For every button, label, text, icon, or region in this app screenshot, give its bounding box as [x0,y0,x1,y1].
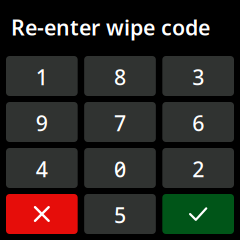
button[interactable]: 5 [84,194,156,234]
button[interactable]: 6 [162,102,234,142]
staticText: 6 [192,109,204,137]
staticText: 5 [114,201,126,229]
staticText: 3 [192,63,204,91]
staticText: 9 [36,109,48,137]
staticText: 4 [36,155,48,183]
button[interactable]: 3 [162,56,234,96]
staticText: 7 [114,109,126,137]
button[interactable]: 8 [84,56,156,96]
staticText: 8 [114,63,126,91]
button[interactable]: 9 [6,102,78,142]
staticText: 0 [114,155,126,183]
button[interactable]: 4 [6,148,78,188]
staticText: 2 [192,155,204,183]
button[interactable]: 1 [6,56,78,96]
button[interactable]: Cancel [6,194,78,234]
staticText: 1 [36,63,48,91]
staticText: Re-enter wipe code [11,13,210,41]
button[interactable]: Confirm [162,194,234,234]
button[interactable]: 0 [84,148,156,188]
button[interactable]: 2 [162,148,234,188]
button[interactable]: 7 [84,102,156,142]
